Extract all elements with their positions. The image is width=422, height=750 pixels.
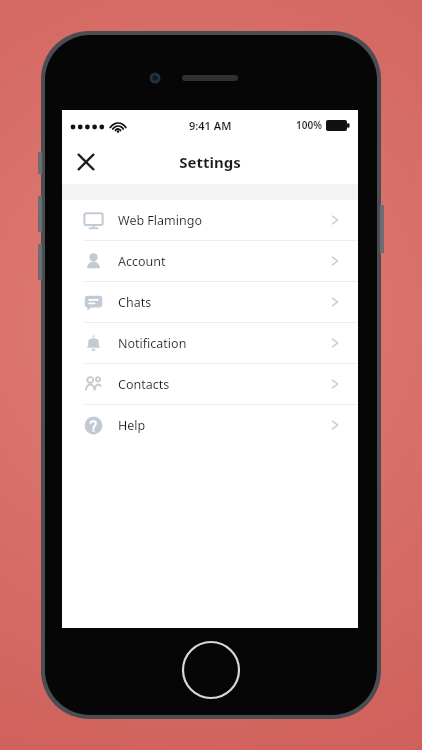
staticText: Notification [118,335,187,352]
button[interactable]: Web Flamingo [62,200,358,240]
staticText: Help [118,417,146,434]
button[interactable]: Contacts [62,364,358,404]
staticText: Chats [118,294,152,311]
staticText: 100% [296,118,322,132]
button[interactable]: Notification [62,323,358,363]
staticText: Account [118,253,166,270]
button[interactable]: Help [62,405,358,445]
button[interactable]: Account [62,241,358,281]
staticText: 9:41 AM [189,118,232,133]
staticText: Settings [179,152,241,172]
staticText: Contacts [118,376,170,393]
button[interactable]: Close [68,144,104,180]
button[interactable]: Chats [62,282,358,322]
staticText: Web Flamingo [118,212,202,229]
